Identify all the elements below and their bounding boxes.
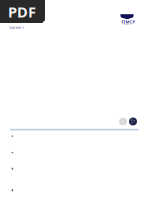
staticText: Lorem ipsum	[121, 24, 130, 25]
staticText: Lorem i	[9, 25, 23, 30]
staticText: FIMCP	[121, 19, 134, 25]
staticText: PDF	[8, 2, 36, 21]
